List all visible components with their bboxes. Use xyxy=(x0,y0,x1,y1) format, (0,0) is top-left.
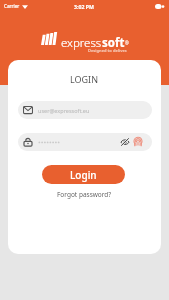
staticText: Login xyxy=(70,168,97,182)
button[interactable]: Fingerprint login xyxy=(131,133,144,151)
staticText: user@expressoft.eu xyxy=(38,107,90,114)
staticText: express xyxy=(61,35,102,51)
staticText: ® xyxy=(125,40,129,46)
button[interactable]: Forgot password? xyxy=(48,188,121,200)
staticText: Carrier xyxy=(4,3,20,9)
button[interactable]: user@expressoft.eu xyxy=(18,101,152,119)
button[interactable]: Show password xyxy=(118,133,131,151)
staticText: Designed to deliver. xyxy=(88,48,128,53)
staticText: soft xyxy=(102,35,125,51)
button[interactable]: Login xyxy=(42,165,125,184)
button[interactable]: Show password xyxy=(18,133,152,151)
staticText: 3:02 PM xyxy=(74,3,94,10)
staticText: LOGIN xyxy=(70,73,99,85)
staticText: Forgot password? xyxy=(57,190,112,199)
